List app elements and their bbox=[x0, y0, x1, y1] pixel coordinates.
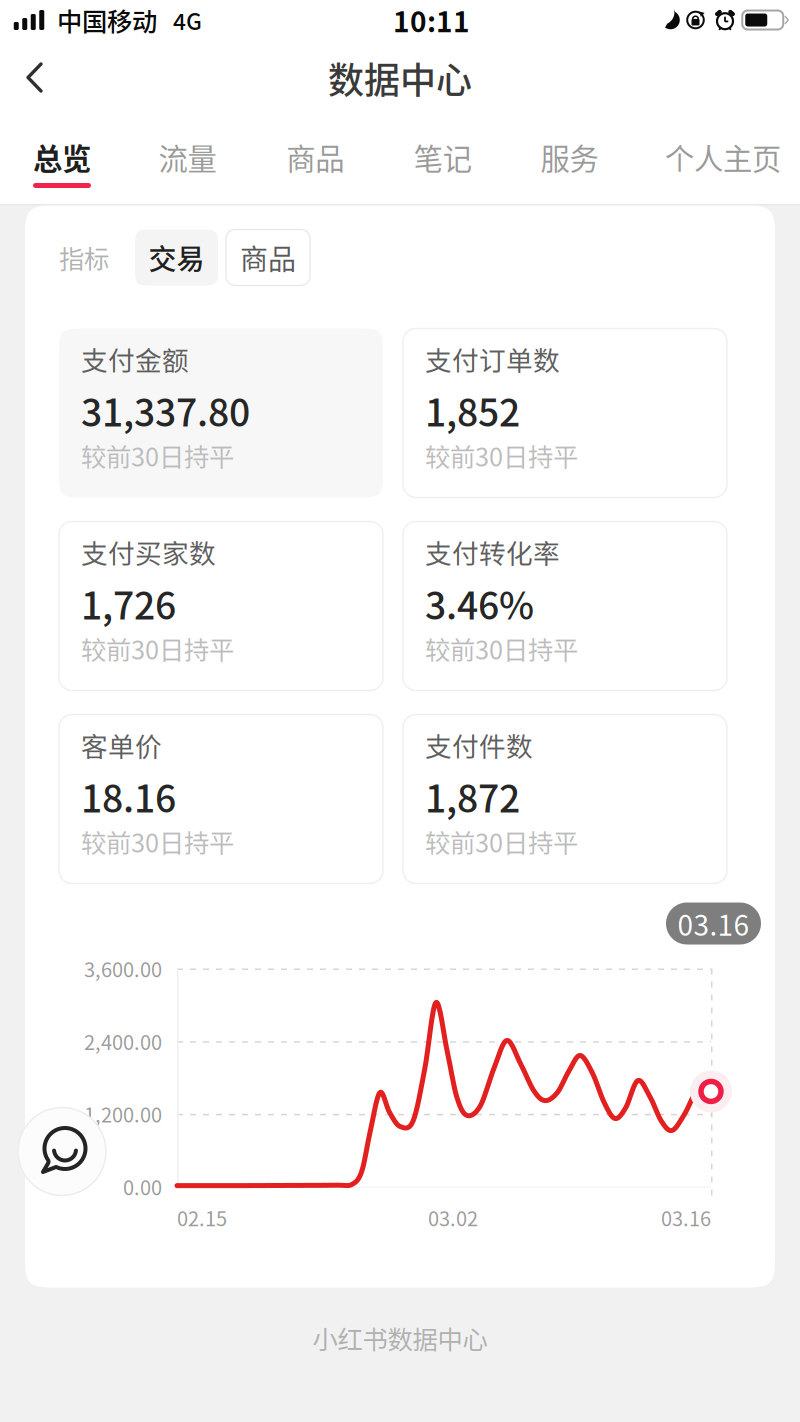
staticText: 支付转化率 bbox=[425, 532, 560, 571]
staticText: 4G bbox=[173, 4, 202, 36]
staticText: 1,872 bbox=[425, 769, 520, 823]
staticText: 2,400.00 bbox=[84, 1027, 162, 1056]
button[interactable]: 总览 bbox=[33, 116, 91, 204]
staticText: 较前30日持平 bbox=[425, 823, 578, 860]
staticText: 03.16 bbox=[677, 903, 749, 944]
button[interactable]: 流量 bbox=[157, 116, 219, 204]
button[interactable]: 支付金额 bbox=[59, 328, 383, 497]
button[interactable]: 客服 bbox=[18, 1107, 106, 1195]
staticText: 支付件数 bbox=[425, 725, 533, 764]
staticText: 31,337.80 bbox=[81, 383, 250, 437]
button[interactable]: 支付买家数 bbox=[59, 521, 383, 690]
staticText: 指标 bbox=[59, 239, 109, 276]
button[interactable]: 笔记 bbox=[412, 116, 474, 204]
button[interactable]: 支付订单数 bbox=[403, 328, 727, 497]
button[interactable]: 商品 bbox=[284, 116, 346, 204]
staticText: 较前30日持平 bbox=[81, 630, 234, 667]
staticText: 服务 bbox=[540, 136, 598, 178]
button[interactable]: 返回 bbox=[0, 40, 70, 116]
staticText: 客单价 bbox=[81, 725, 162, 764]
staticText: 数据中心 bbox=[328, 52, 472, 104]
button[interactable]: 支付件数 bbox=[403, 714, 727, 883]
staticText: 支付订单数 bbox=[425, 339, 560, 378]
staticText: 较前30日持平 bbox=[425, 630, 578, 667]
button[interactable]: 交易 bbox=[135, 229, 218, 285]
staticText: 小红书数据中心 bbox=[312, 1319, 487, 1356]
staticText: 中国移动 bbox=[57, 2, 157, 38]
staticText: 03.02 bbox=[428, 1203, 478, 1232]
staticText: 较前30日持平 bbox=[81, 437, 234, 474]
button[interactable]: 支付转化率 bbox=[403, 521, 727, 690]
staticText: 02.15 bbox=[177, 1203, 227, 1232]
button[interactable]: 客单价 bbox=[59, 714, 383, 883]
staticText: 交易 bbox=[148, 237, 204, 278]
staticText: 个人主页 bbox=[665, 136, 781, 178]
staticText: 商品 bbox=[286, 136, 344, 178]
staticText: 0.00 bbox=[123, 1172, 162, 1201]
staticText: 商品 bbox=[240, 237, 296, 278]
staticText: 支付买家数 bbox=[81, 532, 216, 571]
staticText: 1,200.00 bbox=[84, 1099, 162, 1128]
staticText: 10:11 bbox=[393, 0, 470, 40]
staticText: 较前30日持平 bbox=[425, 437, 578, 474]
staticText: 1,726 bbox=[81, 576, 176, 630]
staticText: 笔记 bbox=[414, 136, 472, 178]
button[interactable]: 个人主页 bbox=[665, 116, 781, 204]
staticText: 3,600.00 bbox=[84, 954, 162, 983]
staticText: 支付金额 bbox=[81, 339, 189, 378]
staticText: 较前30日持平 bbox=[81, 823, 234, 860]
staticText: 1,852 bbox=[425, 383, 520, 437]
staticText: 流量 bbox=[159, 136, 217, 178]
button[interactable]: 商品 bbox=[226, 229, 310, 285]
staticText: 总览 bbox=[33, 136, 91, 178]
staticText: 3.46% bbox=[425, 576, 534, 630]
staticText: 18.16 bbox=[81, 769, 176, 823]
staticText: 03.16 bbox=[661, 1203, 711, 1232]
button[interactable]: 服务 bbox=[539, 116, 599, 204]
